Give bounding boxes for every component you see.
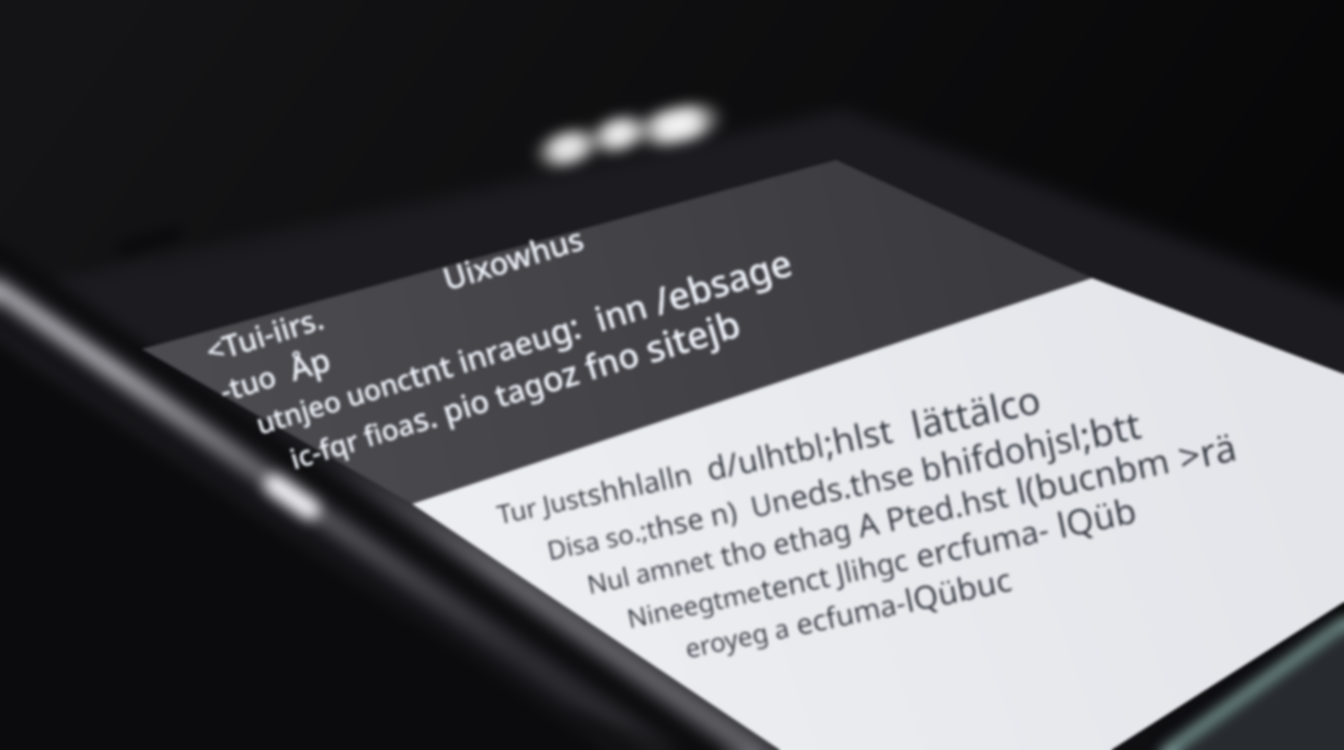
button[interactable]: Uixowhus [404, 236, 654, 302]
button[interactable]: Navigate up [196, 316, 274, 368]
button[interactable]: Message content [470, 420, 1230, 630]
